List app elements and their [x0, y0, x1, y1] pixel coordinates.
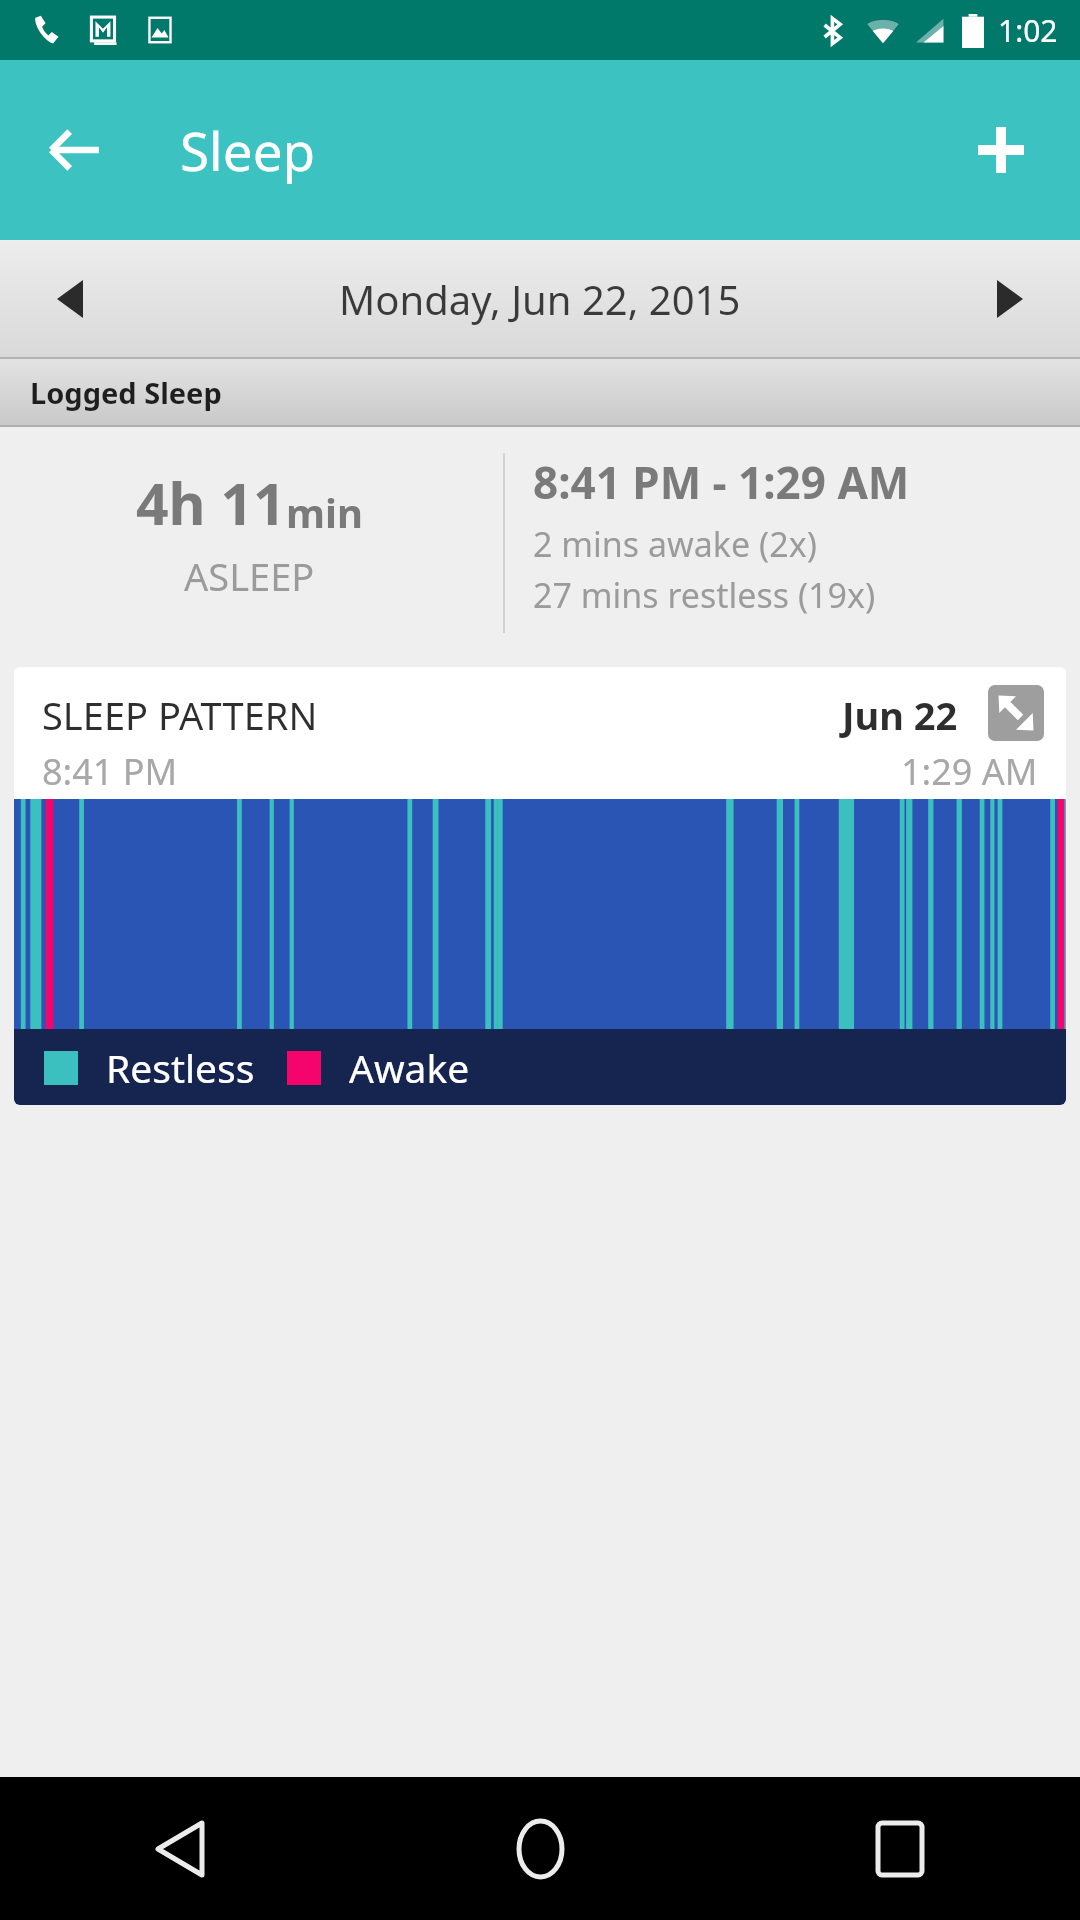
staticText: Awake — [349, 1041, 470, 1094]
staticText: ASLEEP — [184, 550, 315, 602]
button[interactable]: Previous day — [0, 240, 140, 357]
staticText: Restless — [106, 1041, 255, 1094]
staticText: 27 mins restless (19x) — [533, 572, 876, 618]
staticText: 1:29 AM — [901, 747, 1038, 796]
button[interactable]: Home — [360, 1777, 720, 1920]
staticText: Monday, Jun 22, 2015 — [339, 272, 741, 326]
staticText: SLEEP PATTERN — [42, 689, 318, 741]
staticText: Logged Sleep — [30, 373, 222, 412]
staticText: 8:41 PM - 1:29 AM — [533, 452, 910, 512]
staticText: min — [286, 485, 363, 539]
button[interactable]: Expand chart — [988, 685, 1044, 741]
button[interactable]: SLEEP PATTERN — [14, 667, 1066, 1105]
button[interactable]: Recent apps — [720, 1777, 1080, 1920]
staticText: Jun 22 — [842, 689, 958, 741]
staticText: 8:41 PM — [42, 747, 178, 796]
button[interactable]: 4h 11 — [0, 427, 1080, 659]
staticText: 4h 11 — [136, 464, 286, 542]
button[interactable]: Back — [34, 110, 114, 190]
staticText: Sleep — [180, 114, 316, 186]
button[interactable]: Add sleep — [958, 107, 1044, 193]
staticText: 1:02 — [998, 10, 1058, 51]
button[interactable]: Next day — [940, 240, 1080, 357]
button[interactable]: Back — [0, 1777, 360, 1920]
staticText: 2 mins awake (2x) — [533, 521, 817, 567]
